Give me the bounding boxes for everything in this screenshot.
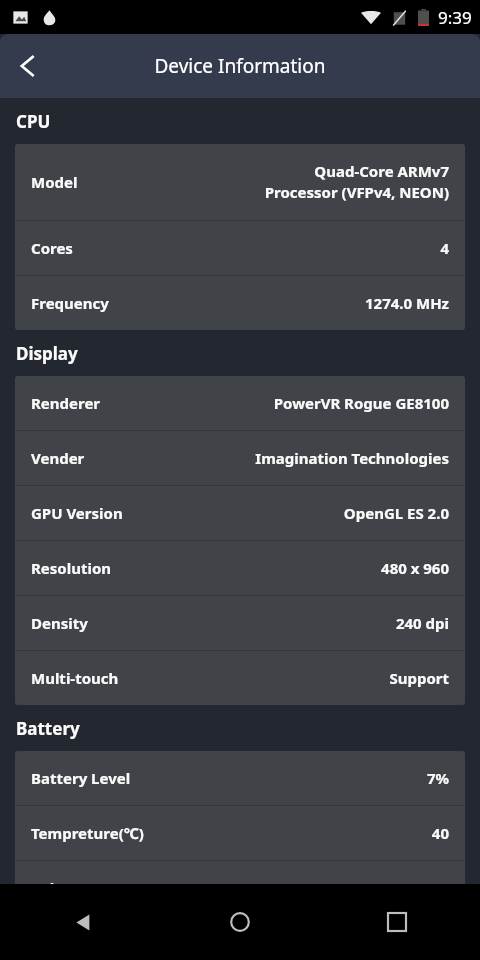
staticText: 240 dpi xyxy=(395,613,449,633)
button[interactable]: Recent apps xyxy=(367,892,427,952)
staticText: Imagination Technologies xyxy=(255,448,449,468)
button[interactable]: Frequency xyxy=(15,276,465,330)
staticText: 9:39 xyxy=(438,6,472,29)
button[interactable]: Renderer xyxy=(15,376,465,430)
staticText: Renderer xyxy=(31,393,101,413)
staticText: 480 x 960 xyxy=(381,558,449,578)
staticText: Frequency xyxy=(31,293,109,313)
button[interactable]: Home xyxy=(210,892,270,952)
staticText: OpenGL ES 2.0 xyxy=(343,503,449,523)
staticText: Display xyxy=(16,342,78,365)
button[interactable]: Vender xyxy=(15,431,465,485)
staticText: Voltage xyxy=(31,878,89,884)
staticText: Model xyxy=(31,172,78,192)
staticText: 40 xyxy=(431,823,449,843)
staticText: Quad-Core ARMv7 Processor (VFPv4, NEON) xyxy=(264,161,449,203)
staticText: Support xyxy=(389,668,449,688)
staticText: Tempreture(℃) xyxy=(31,823,144,843)
button[interactable]: Density xyxy=(15,596,465,650)
staticText: GPU Version xyxy=(31,503,123,523)
staticText: Battery xyxy=(16,717,80,740)
staticText: PowerVR Rogue GE8100 xyxy=(273,393,449,413)
button[interactable]: Multi-touch xyxy=(15,651,465,705)
staticText: Vender xyxy=(31,448,85,468)
button[interactable]: Model xyxy=(15,144,465,220)
button[interactable]: Tempreture(℃) xyxy=(15,806,465,860)
button[interactable]: Cores xyxy=(15,221,465,275)
staticText: Battery Level xyxy=(31,768,131,788)
staticText: Density xyxy=(31,613,88,633)
button[interactable]: GPU Version xyxy=(15,486,465,540)
staticText: CPU xyxy=(16,110,51,133)
button[interactable]: Resolution xyxy=(15,541,465,595)
button[interactable]: Back xyxy=(53,892,113,952)
button[interactable]: Battery Level xyxy=(15,751,465,805)
button[interactable]: Back xyxy=(0,38,56,94)
staticText: 7% xyxy=(426,768,449,788)
staticText: Multi-touch xyxy=(31,668,119,688)
staticText: Cores xyxy=(31,238,73,258)
staticText: 4 xyxy=(440,238,449,258)
staticText: Device Information xyxy=(154,53,326,79)
staticText: Resolution xyxy=(31,558,112,578)
staticText: 1274.0 MHz xyxy=(364,293,449,313)
